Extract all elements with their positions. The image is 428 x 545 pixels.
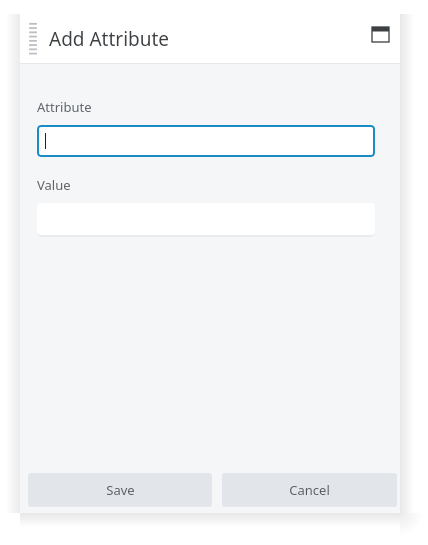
staticText: Value bbox=[37, 176, 71, 194]
button[interactable] bbox=[37, 125, 375, 157]
staticText: Add Attribute bbox=[49, 26, 170, 52]
button[interactable]: Save bbox=[28, 473, 212, 507]
button[interactable]: Cancel bbox=[222, 473, 397, 507]
staticText: Attribute bbox=[37, 98, 92, 116]
staticText: Cancel bbox=[289, 481, 330, 499]
button[interactable]: Open in window bbox=[368, 22, 392, 46]
other: Drag handle bbox=[28, 22, 38, 56]
staticText: Save bbox=[106, 481, 135, 499]
